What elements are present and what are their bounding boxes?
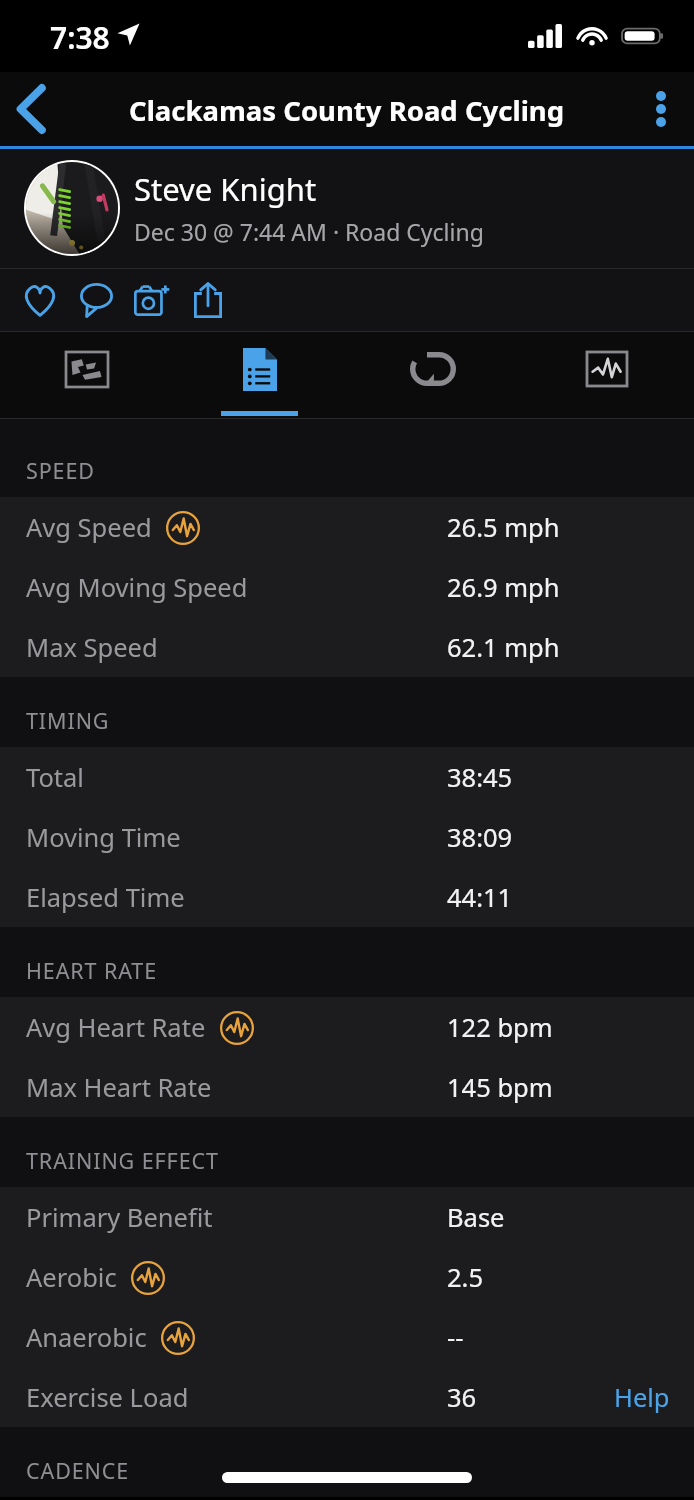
- staticText: TIMING: [26, 706, 110, 735]
- button[interactable]: Elapsed Time: [0, 867, 694, 927]
- button[interactable]: Graphs: [520, 332, 694, 418]
- staticText: Primary Benefit: [26, 1200, 213, 1235]
- button[interactable]: Map: [0, 332, 173, 418]
- button[interactable]: Max Heart Rate: [0, 1057, 694, 1117]
- button[interactable]: Primary Benefit: [0, 1187, 694, 1247]
- staticText: 26.9 mph: [447, 570, 560, 605]
- button[interactable]: Share: [180, 271, 236, 329]
- staticText: Steve Knight: [134, 168, 317, 210]
- button[interactable]: Back: [0, 72, 72, 146]
- button[interactable]: Aerobic: [0, 1247, 694, 1307]
- button[interactable]: Avg Speed: [0, 497, 694, 557]
- staticText: HEART RATE: [26, 956, 158, 985]
- staticText: Dec 30 @ 7:44 AM · Road Cycling: [134, 216, 484, 247]
- staticText: Avg Heart Rate: [26, 1010, 206, 1045]
- staticText: 62.1 mph: [447, 630, 560, 665]
- staticText: 145 bpm: [447, 1070, 553, 1105]
- button[interactable]: Help: [614, 1380, 670, 1415]
- staticText: 2.5: [447, 1260, 484, 1295]
- staticText: Total: [26, 760, 84, 795]
- staticText: 36: [447, 1380, 477, 1415]
- button[interactable]: Max Speed: [0, 617, 694, 677]
- button[interactable]: Exercise Load: [0, 1367, 694, 1427]
- staticText: TRAINING EFFECT: [26, 1146, 219, 1175]
- button[interactable]: Avg Moving Speed: [0, 557, 694, 617]
- staticText: SPEED: [26, 456, 95, 485]
- staticText: Max Speed: [26, 630, 158, 665]
- staticText: Help: [614, 1380, 670, 1415]
- staticText: CADENCE: [26, 1456, 130, 1485]
- button[interactable]: Laps: [346, 332, 520, 418]
- button[interactable]: Moving Time: [0, 807, 694, 867]
- staticText: Base: [447, 1200, 505, 1235]
- button[interactable]: Like: [12, 271, 68, 329]
- button[interactable]: Anaerobic: [0, 1307, 694, 1367]
- staticText: 38:09: [447, 820, 513, 855]
- staticText: Avg Speed: [26, 510, 152, 545]
- staticText: Aerobic: [26, 1260, 117, 1295]
- button[interactable]: Details: [173, 332, 346, 418]
- staticText: 26.5 mph: [447, 510, 560, 545]
- staticText: 44:11: [447, 880, 513, 915]
- staticText: Exercise Load: [26, 1380, 189, 1415]
- staticText: Max Heart Rate: [26, 1070, 212, 1105]
- staticText: Elapsed Time: [26, 880, 185, 915]
- staticText: 38:45: [447, 760, 513, 795]
- staticText: 122 bpm: [447, 1010, 553, 1045]
- button[interactable]: Avg Heart Rate: [0, 997, 694, 1057]
- button[interactable]: Comment: [68, 271, 124, 329]
- staticText: 7:38: [50, 17, 110, 58]
- staticText: Anaerobic: [26, 1320, 147, 1355]
- staticText: Avg Moving Speed: [26, 570, 248, 605]
- button[interactable]: Total: [0, 747, 694, 807]
- button[interactable]: Add photo: [124, 271, 180, 329]
- staticText: Clackamas County Road Cycling: [129, 92, 565, 129]
- button[interactable]: Steve Knight: [0, 149, 694, 268]
- staticText: --: [447, 1320, 464, 1355]
- button[interactable]: More options: [628, 72, 694, 146]
- staticText: Moving Time: [26, 820, 181, 855]
